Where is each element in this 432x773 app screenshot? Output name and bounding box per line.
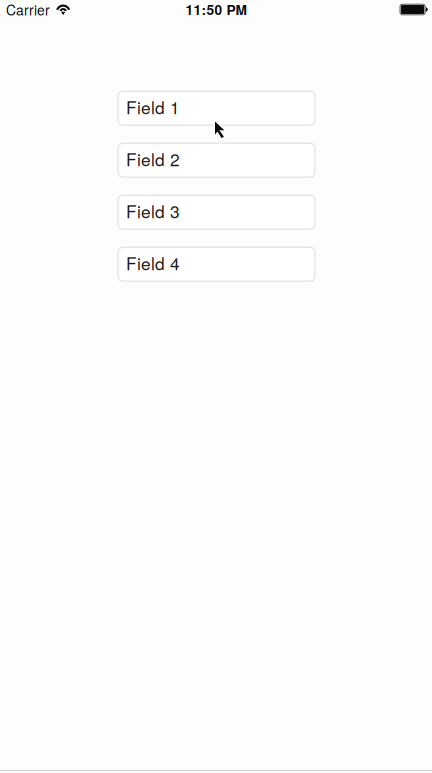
button[interactable]: Field 2: [118, 143, 315, 177]
staticText: Field 1: [126, 94, 180, 119]
button[interactable]: Field 4: [118, 247, 315, 281]
button[interactable]: Field 3: [118, 195, 315, 229]
button[interactable]: Field 1: [118, 91, 315, 125]
staticText: Field 4: [126, 250, 180, 275]
staticText: Carrier: [6, 0, 50, 19]
staticText: Field 2: [126, 146, 180, 171]
staticText: Field 3: [126, 198, 180, 223]
staticText: 11:50 PM: [185, 0, 246, 19]
